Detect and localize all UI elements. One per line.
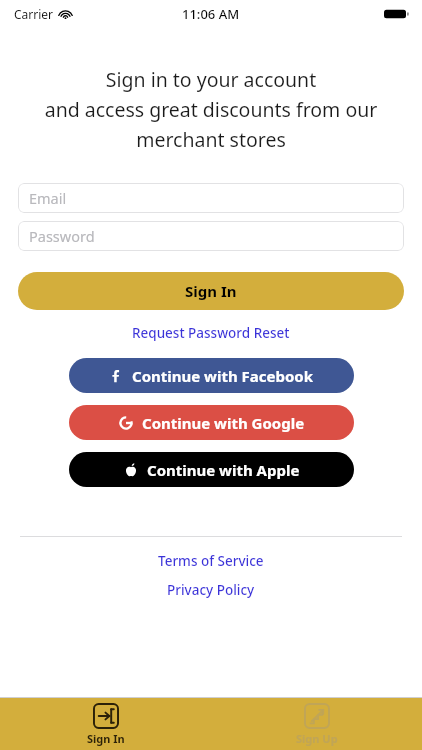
staticText: Sign In bbox=[87, 731, 125, 746]
staticText: Sign In bbox=[185, 281, 237, 301]
staticText: Privacy Policy bbox=[167, 581, 255, 599]
staticText: Sign in to your account and access great… bbox=[16, 66, 406, 152]
staticText: Terms of Service bbox=[158, 552, 264, 570]
button[interactable]: Sign Up bbox=[211, 698, 422, 750]
button[interactable]: Continue with Facebook bbox=[69, 358, 354, 393]
button[interactable]: Sign In bbox=[18, 272, 404, 310]
staticText: 11:06 AM bbox=[182, 5, 240, 23]
button[interactable]: Email bbox=[18, 183, 404, 213]
button[interactable]: Privacy Policy bbox=[161, 580, 261, 600]
button[interactable]: Continue with Apple bbox=[69, 452, 354, 487]
staticText: Continue with Apple bbox=[147, 460, 300, 480]
button[interactable]: Continue with Google bbox=[69, 405, 354, 440]
staticText: Password bbox=[29, 226, 95, 246]
staticText: Continue with Google bbox=[142, 413, 305, 433]
button[interactable]: Password bbox=[18, 221, 404, 251]
button[interactable]: Terms of Service bbox=[152, 551, 270, 571]
staticText: Continue with Facebook bbox=[132, 366, 314, 386]
button[interactable]: Sign In bbox=[0, 698, 211, 750]
staticText: Email bbox=[29, 188, 67, 208]
button[interactable]: Request Password Reset bbox=[126, 323, 296, 343]
staticText: Sign Up bbox=[296, 731, 338, 746]
staticText: Request Password Reset bbox=[132, 324, 290, 342]
staticText: Carrier bbox=[14, 6, 54, 22]
